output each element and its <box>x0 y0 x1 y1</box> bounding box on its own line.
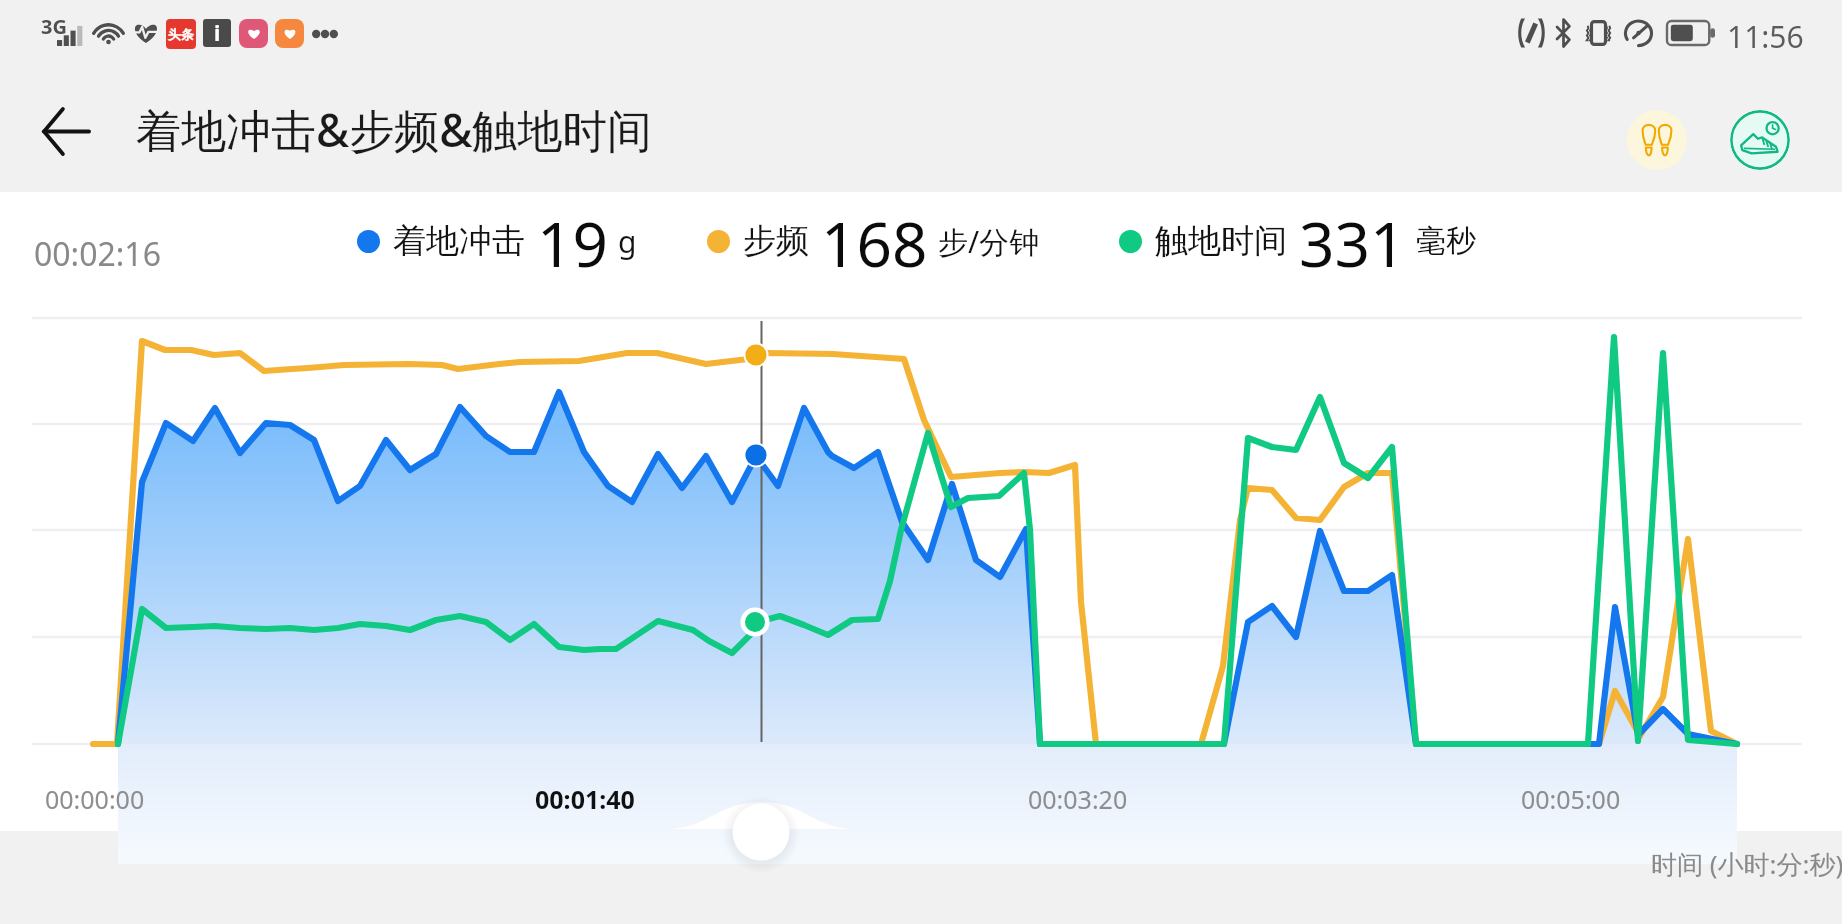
staticText: 11:56 <box>1727 16 1804 57</box>
button[interactable]: 触地时间 <box>1119 201 1476 281</box>
staticText: 时间 (小时:分:秒) <box>1651 846 1842 882</box>
staticText: 触地时间 <box>1155 220 1287 262</box>
button[interactable]: 步频 <box>707 201 1040 281</box>
staticText: 毫秒 <box>1416 222 1476 260</box>
button[interactable]: 着地冲击 <box>357 201 637 281</box>
staticText: 步/分钟 <box>938 221 1040 262</box>
staticText: 00:02:16 <box>34 232 161 276</box>
staticText: 着地冲击&步频&触地时间 <box>136 99 653 160</box>
staticText: 头条 <box>168 26 194 42</box>
staticText: g <box>618 221 637 262</box>
staticText: 00:03:20 <box>1028 782 1128 816</box>
staticText: 168 <box>821 201 928 281</box>
staticText: 着地冲击 <box>393 220 525 262</box>
button[interactable]: Back <box>26 91 106 171</box>
button[interactable]: Cadence <box>1627 110 1687 170</box>
button[interactable]: Shoe <box>1730 110 1790 170</box>
staticText: 19 <box>537 201 608 281</box>
staticText: 00:01:40 <box>535 782 635 816</box>
staticText: 00:00:00 <box>45 782 145 816</box>
staticText: 331 <box>1299 201 1406 281</box>
staticText: 3G <box>41 13 67 40</box>
button[interactable]: Scrub handle <box>722 793 800 871</box>
staticText: 00:05:00 <box>1521 782 1621 816</box>
staticText: 步频 <box>743 220 809 262</box>
staticText: i <box>214 19 221 47</box>
